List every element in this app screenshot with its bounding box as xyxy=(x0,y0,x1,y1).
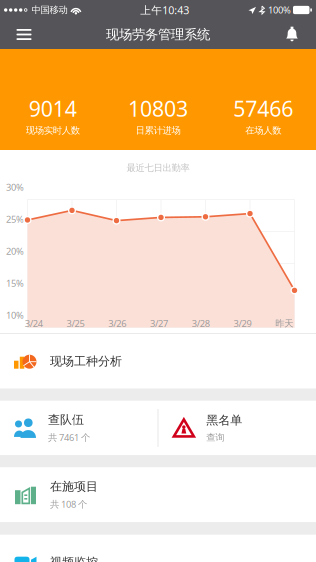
staticText: 3/25 xyxy=(67,317,85,330)
staticText: 上午10:43 xyxy=(140,3,189,17)
staticText: 3/28 xyxy=(192,317,210,330)
staticText: 20% xyxy=(6,245,24,257)
staticText: 在场人数 xyxy=(245,125,281,136)
staticText: 15% xyxy=(6,277,24,289)
staticText: 57466 xyxy=(233,94,293,123)
staticText: 视频监控 xyxy=(50,555,98,562)
staticText: 现场劳务管理系统 xyxy=(106,26,210,43)
button[interactable]: 9014 xyxy=(0,49,105,150)
staticText: 现场实时人数 xyxy=(26,125,80,136)
button[interactable]: 10803 xyxy=(105,49,211,150)
staticText: 查询 xyxy=(206,432,224,443)
staticText: 共 7461 个 xyxy=(48,431,90,443)
staticText: 最近七日出勤率 xyxy=(126,162,189,174)
staticText: 9014 xyxy=(29,94,77,123)
staticText: 3/27 xyxy=(150,317,168,330)
button[interactable]: Menu xyxy=(0,20,48,49)
button[interactable]: Notifications xyxy=(268,20,316,49)
button[interactable]: 在施项目 xyxy=(0,467,316,522)
staticText: 黑名单 xyxy=(206,413,242,427)
button[interactable]: 黑名单 xyxy=(158,400,316,455)
staticText: 日累计进场 xyxy=(135,125,180,136)
staticText: 10% xyxy=(6,309,24,321)
staticText: 共 108 个 xyxy=(50,498,87,510)
staticText: 中国移动 xyxy=(31,4,67,16)
staticText: 现场工种分析 xyxy=(50,354,122,368)
button[interactable]: 现场工种分析 xyxy=(0,334,316,389)
staticText: 3/29 xyxy=(233,317,251,330)
button[interactable]: 视频监控 xyxy=(0,535,316,562)
staticText: 查队伍 xyxy=(48,412,84,427)
button[interactable]: 57466 xyxy=(211,49,316,150)
staticText: 10803 xyxy=(128,94,188,123)
staticText: 在施项目 xyxy=(50,479,98,494)
staticText: 昨天 xyxy=(275,318,293,329)
button[interactable]: 查队伍 xyxy=(0,400,158,455)
staticText: 25% xyxy=(6,213,24,225)
staticText: 100% xyxy=(268,4,291,16)
staticText: 30% xyxy=(6,181,24,193)
staticText: 3/24 xyxy=(25,317,43,330)
staticText: 3/26 xyxy=(108,317,126,330)
